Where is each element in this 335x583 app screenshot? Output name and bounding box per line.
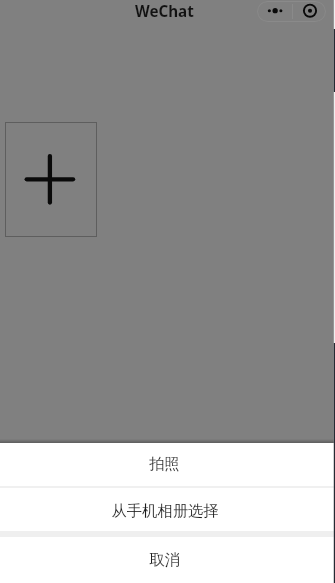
button[interactable]: More options — [257, 1, 292, 22]
staticText: WeChat — [135, 1, 194, 22]
button[interactable]: 从手机相册选择 — [0, 488, 335, 531]
button[interactable]: Add image — [5, 122, 97, 237]
button[interactable]: 取消 — [0, 537, 335, 583]
staticText: 从手机相册选择 — [111, 501, 219, 520]
button[interactable]: 拍照 — [0, 443, 335, 486]
staticText: 拍照 — [149, 454, 180, 473]
button[interactable]: Close mini program — [293, 1, 326, 22]
staticText: 取消 — [149, 550, 180, 569]
